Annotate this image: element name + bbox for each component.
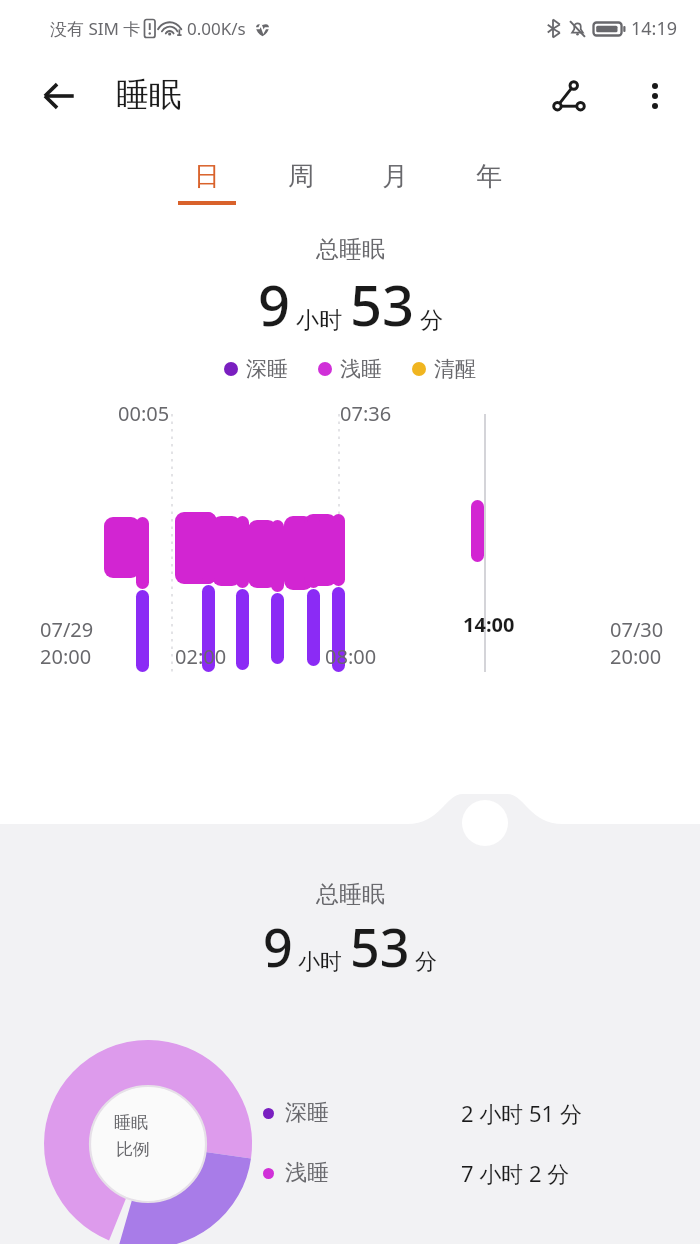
staticText: 08:00 — [325, 643, 377, 670]
button[interactable]: 日 — [160, 160, 254, 205]
button[interactable]: More options — [630, 71, 680, 121]
staticText: 14:00 — [463, 611, 515, 638]
staticText: 07:36 — [340, 400, 392, 427]
button[interactable]: 月 — [348, 160, 442, 201]
staticText: 7 小时 2 分 — [461, 1158, 570, 1188]
staticText: 小时 — [296, 306, 342, 335]
staticText: 小时 — [298, 948, 342, 976]
staticText: 没有 SIM 卡 — [50, 17, 141, 40]
staticText: 分 — [415, 948, 437, 976]
staticText: 53 — [350, 911, 410, 982]
staticText: 总睡眠 — [316, 880, 385, 909]
staticText: 睡眠 — [116, 74, 182, 116]
staticText: 深睡 — [285, 1099, 329, 1127]
staticText: 月 — [382, 160, 408, 193]
staticText: 年 — [476, 160, 502, 193]
staticText: 07/29 — [40, 616, 94, 643]
staticText: 20:00 — [610, 643, 662, 670]
staticText: 20:00 — [40, 643, 92, 670]
staticText: 00:05 — [118, 400, 170, 427]
button[interactable]: Share — [542, 69, 596, 123]
staticText: 9 — [263, 911, 293, 982]
button[interactable]: 年 — [442, 160, 536, 201]
staticText: 日 — [194, 160, 220, 193]
staticText: 分 — [420, 306, 443, 335]
button[interactable]: 深睡 — [0, 1098, 700, 1128]
staticText: 浅睡 — [340, 356, 382, 382]
button[interactable]: 浅睡 — [0, 1158, 700, 1188]
staticText: 07/30 — [610, 616, 664, 643]
staticText: 02:00 — [175, 643, 227, 670]
button[interactable]: 周 — [254, 160, 348, 201]
staticText: 浅睡 — [285, 1159, 329, 1187]
staticText: 周 — [288, 160, 314, 193]
button[interactable]: 深睡 — [224, 356, 288, 382]
staticText: 9 — [258, 266, 291, 342]
button[interactable]: 清醒 — [412, 356, 476, 382]
staticText: 14:19 — [631, 16, 678, 41]
staticText: 深睡 — [246, 356, 288, 382]
button[interactable]: 浅睡 — [318, 356, 382, 382]
staticText: 53 — [350, 266, 415, 342]
staticText: 总睡眠 — [316, 235, 385, 264]
staticText: 清醒 — [434, 356, 476, 382]
button[interactable]: Back — [32, 69, 86, 123]
staticText: 0.00K/s — [187, 17, 246, 40]
staticText: 睡眠 — [114, 1112, 148, 1133]
staticText: 2 小时 51 分 — [461, 1098, 582, 1128]
staticText: 比例 — [116, 1139, 150, 1160]
